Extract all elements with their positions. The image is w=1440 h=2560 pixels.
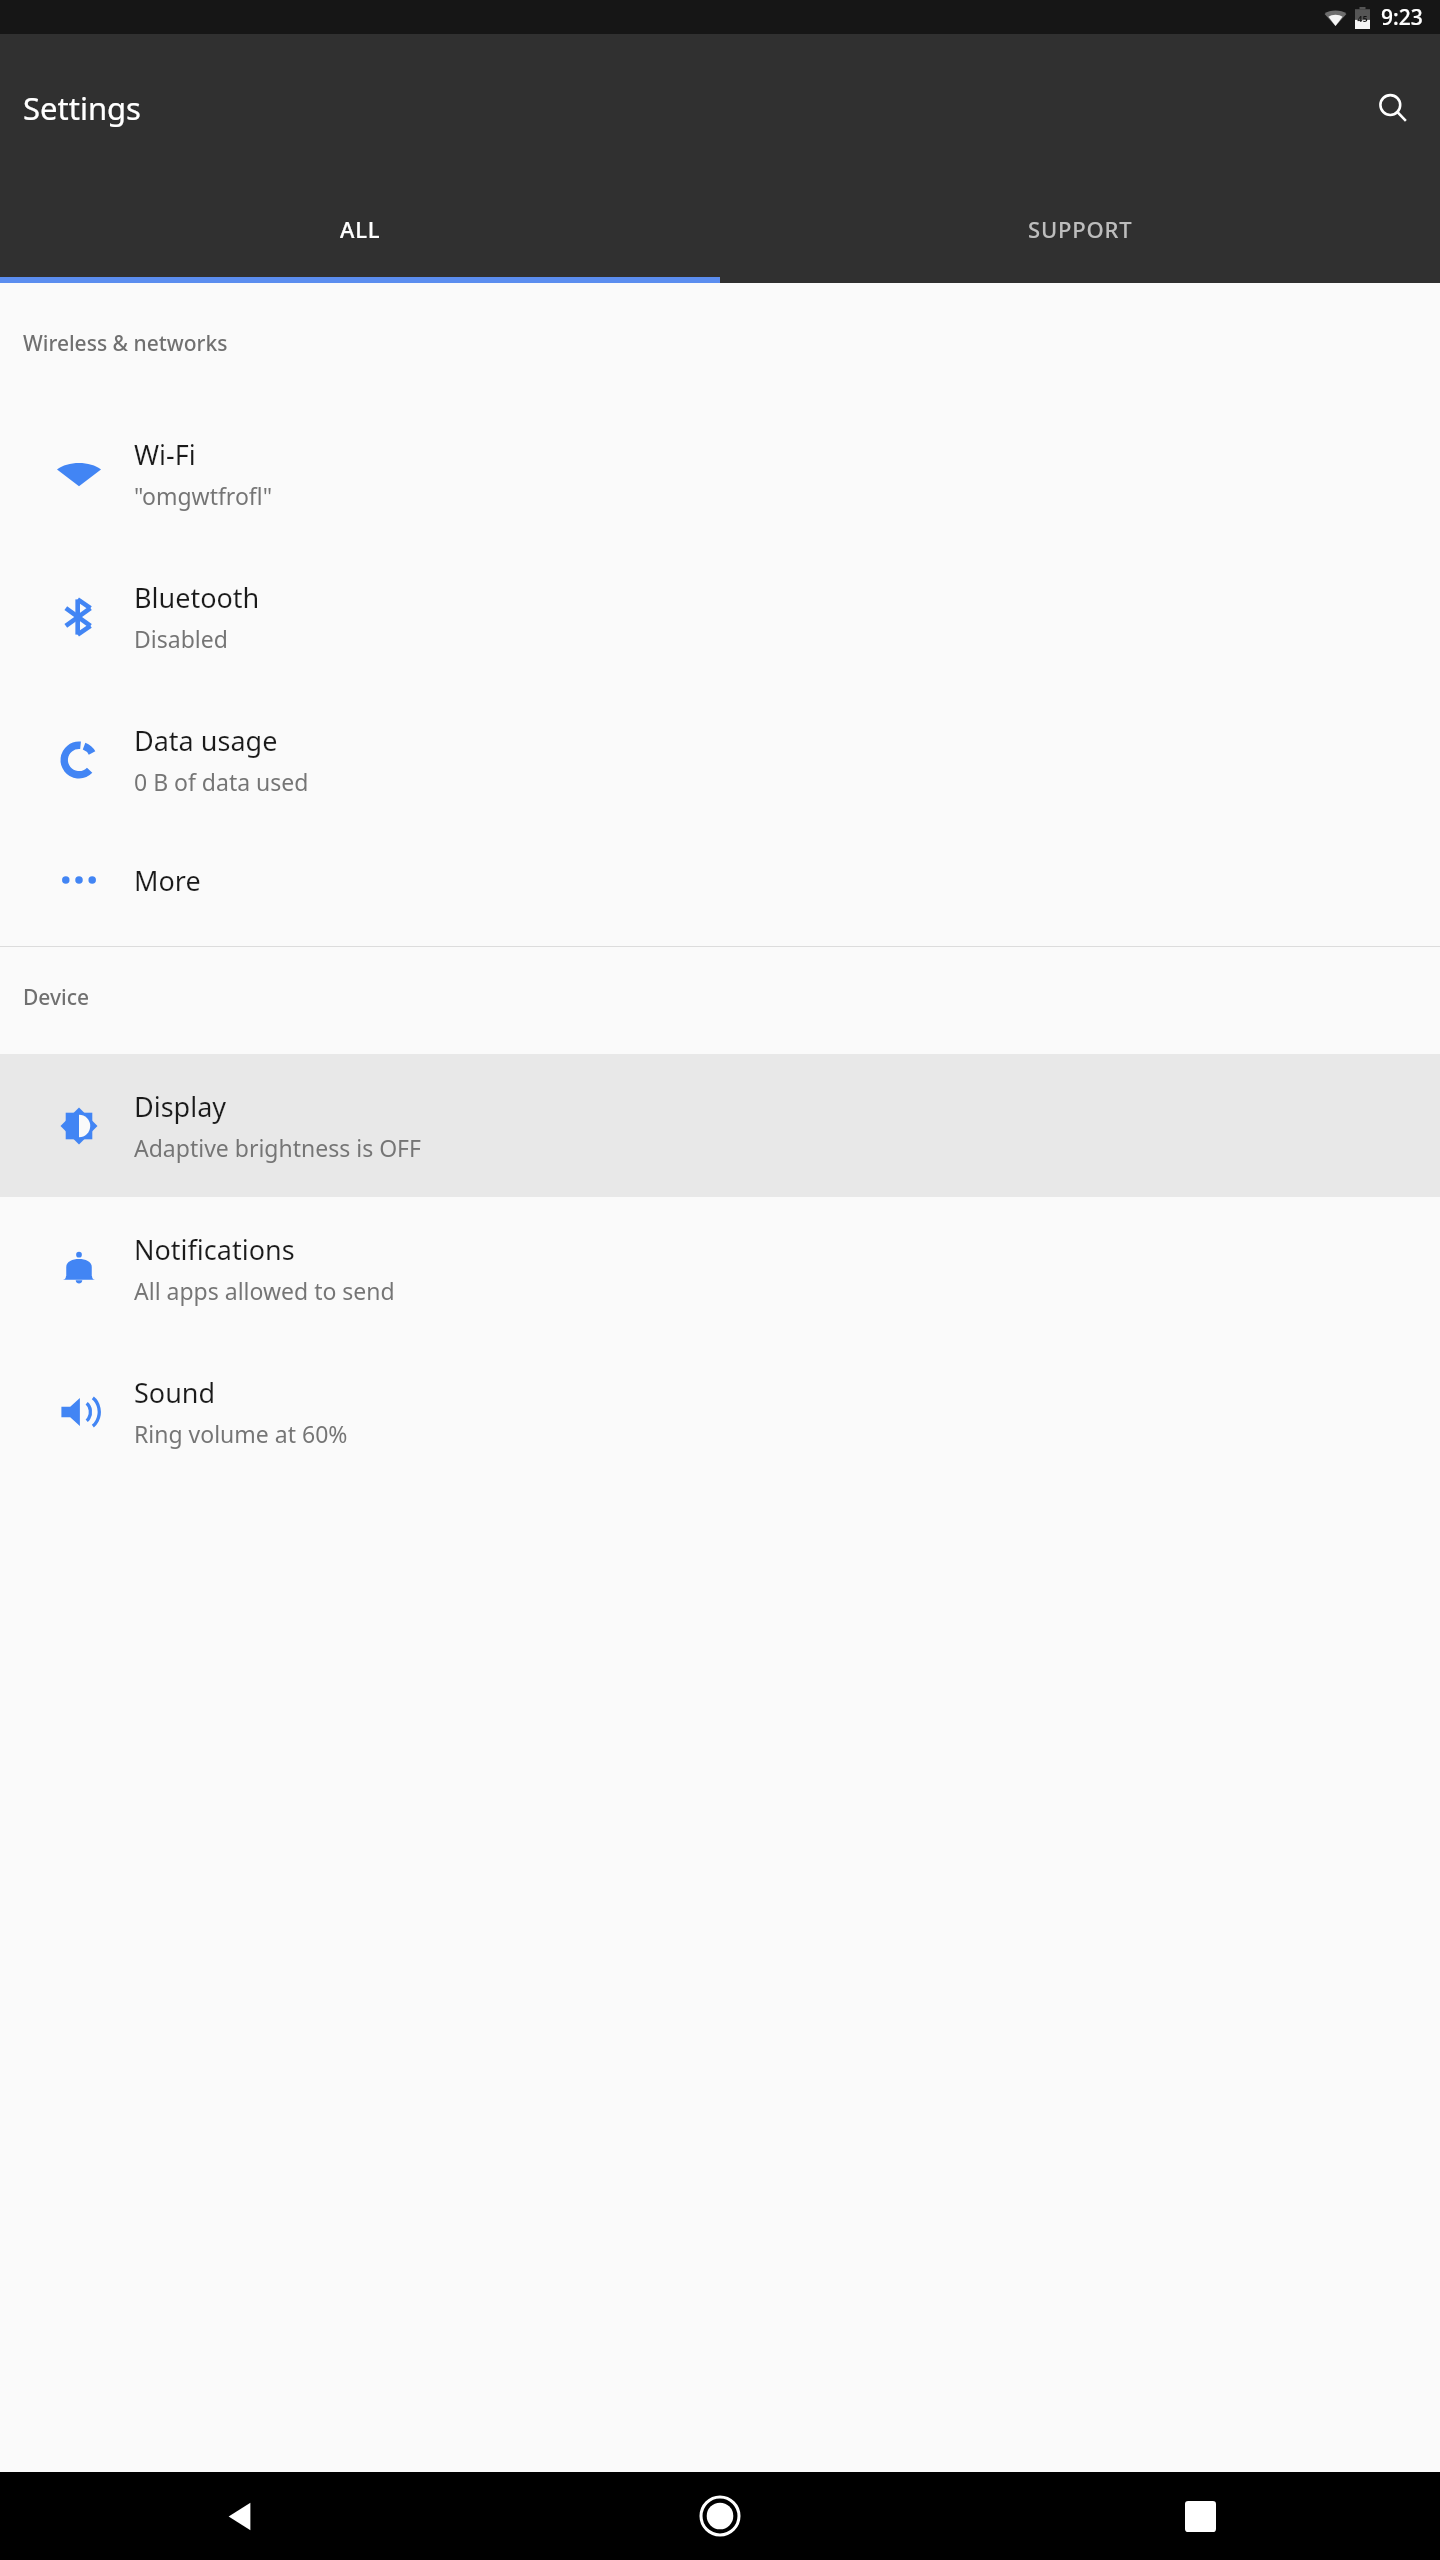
button[interactable]: Data usage [0,688,1440,831]
staticText: Disabled [134,623,228,654]
button[interactable]: More [0,831,1440,929]
staticText: Device [23,983,90,1012]
staticText: Sound [134,1374,216,1411]
staticText: Ring volume at 60% [134,1418,348,1449]
button[interactable]: Back [0,2472,480,2560]
staticText: Notifications [134,1231,295,1268]
staticText: "omgwtfrofl" [134,480,273,511]
button[interactable]: Display [0,1054,1440,1197]
staticText: ALL [340,214,381,244]
button[interactable]: Search [1364,79,1422,137]
button[interactable]: Bluetooth [0,545,1440,688]
button[interactable]: Notifications [0,1197,1440,1340]
staticText: Bluetooth [134,579,260,616]
staticText: Display [134,1088,227,1125]
button[interactable]: ALL [0,181,720,277]
staticText: 9:23 [1381,3,1423,32]
staticText: SUPPORT [1028,214,1133,244]
staticText: Adaptive brightness is OFF [134,1132,421,1163]
button[interactable]: SUPPORT [720,181,1440,277]
button[interactable]: Sound [0,1340,1440,1483]
button[interactable]: Recent apps [960,2472,1440,2560]
button[interactable]: Wi-Fi [0,402,1440,545]
staticText: Wireless & networks [23,329,228,358]
staticText: All apps allowed to send [134,1275,395,1306]
staticText: Settings [23,87,141,129]
staticText: More [134,862,201,899]
button[interactable]: Home [480,2472,960,2560]
staticText: 45 [1357,12,1368,24]
staticText: Data usage [134,722,278,759]
staticText: Wi-Fi [134,436,196,473]
staticText: 0 B of data used [134,766,309,797]
